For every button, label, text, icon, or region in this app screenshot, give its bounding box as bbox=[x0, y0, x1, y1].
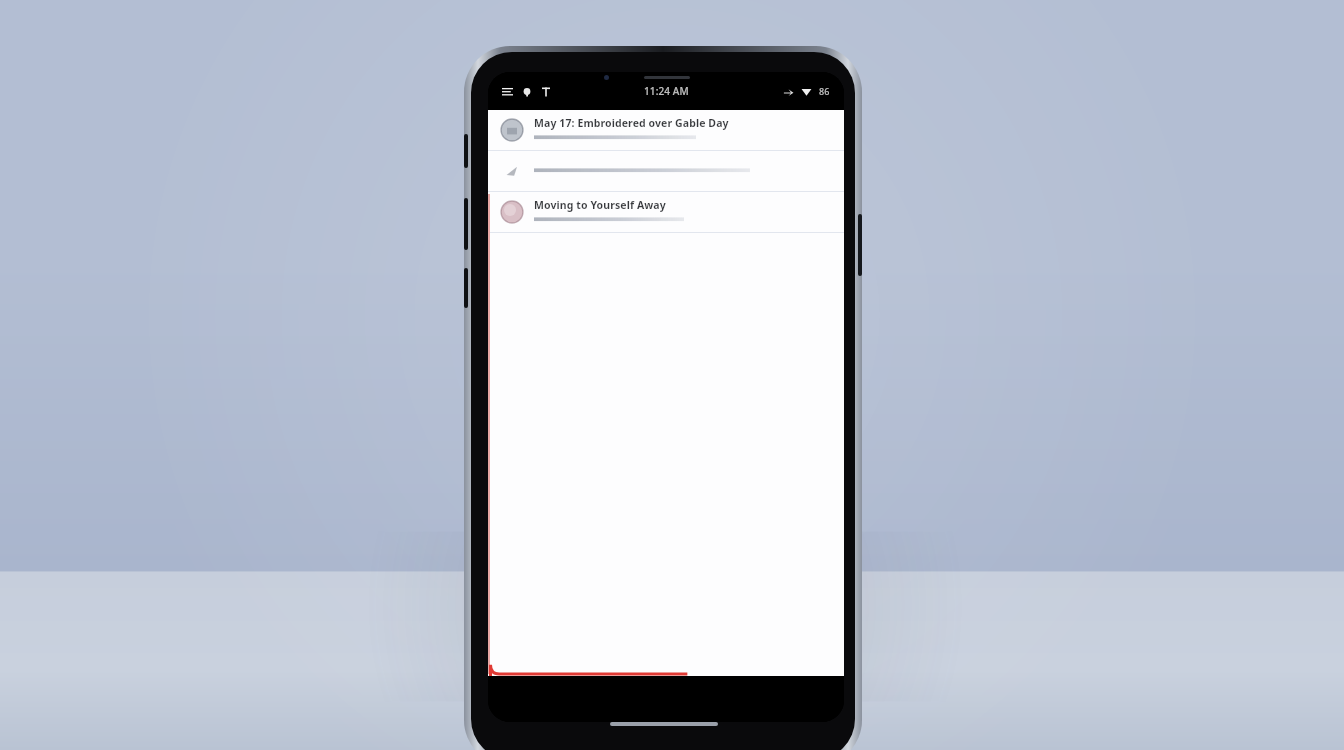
button[interactable]: Item icon bbox=[488, 151, 844, 191]
staticText: Moving to Yourself Away bbox=[534, 198, 690, 212]
button[interactable]: May 17: Embroidered over Gable Day bbox=[488, 110, 844, 150]
staticText: May 17: Embroidered over Gable Day bbox=[534, 116, 774, 130]
staticText: 86 bbox=[819, 85, 830, 97]
staticText: 11:24 AM bbox=[644, 84, 689, 98]
button[interactable]: Moving to Yourself Away bbox=[488, 192, 844, 232]
other: Item icon bbox=[503, 162, 521, 180]
